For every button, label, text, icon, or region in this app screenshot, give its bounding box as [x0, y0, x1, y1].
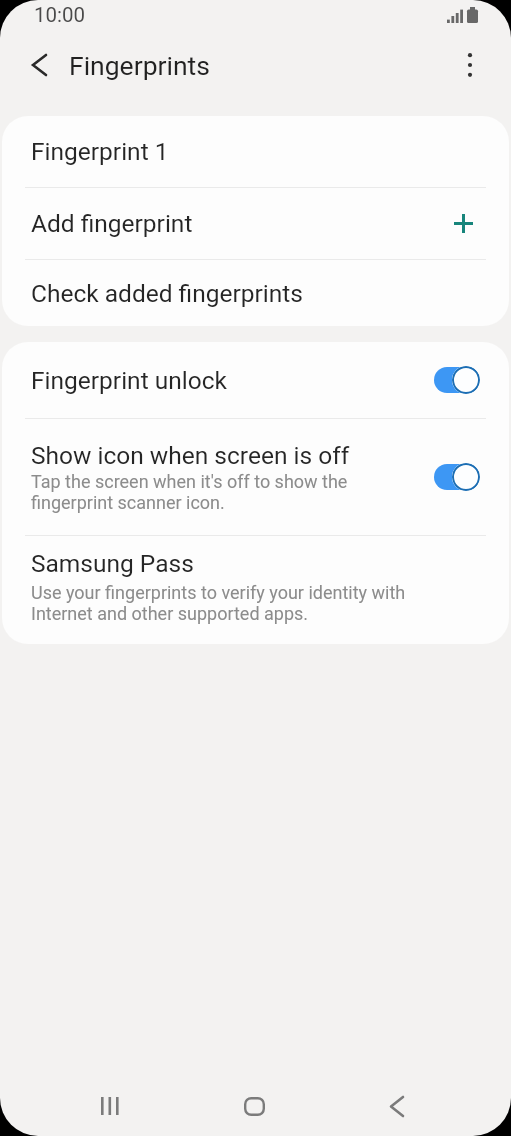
button[interactable]	[373, 1082, 421, 1130]
staticText: Fingerprint 1	[31, 137, 169, 166]
staticText: Tap the screen when it's off to show the…	[31, 471, 348, 513]
button[interactable]	[86, 1082, 134, 1130]
button[interactable]: Show icon when screen is off	[2, 419, 509, 535]
button[interactable]: Fingerprint unlock	[2, 342, 509, 418]
staticText: Show icon when screen is off	[31, 441, 350, 470]
button[interactable]	[230, 1082, 278, 1130]
button[interactable]: Fingerprint 1	[2, 116, 509, 187]
button[interactable]	[434, 463, 480, 491]
button[interactable]: Samsung Pass	[2, 536, 509, 644]
staticText: 10:00	[34, 3, 86, 27]
button[interactable]	[453, 48, 487, 82]
staticText: Check added fingerprints	[31, 279, 303, 308]
staticText: Add fingerprint	[31, 209, 193, 238]
button[interactable]: Add fingerprint	[2, 188, 509, 259]
button[interactable]: Check added fingerprints	[2, 260, 509, 326]
button[interactable]	[22, 48, 56, 82]
button[interactable]	[434, 366, 480, 394]
staticText: Fingerprints	[69, 50, 210, 81]
staticText: Samsung Pass	[31, 549, 194, 578]
staticText: Use your fingerprints to verify your ide…	[31, 582, 406, 624]
staticText: Fingerprint unlock	[31, 366, 434, 395]
